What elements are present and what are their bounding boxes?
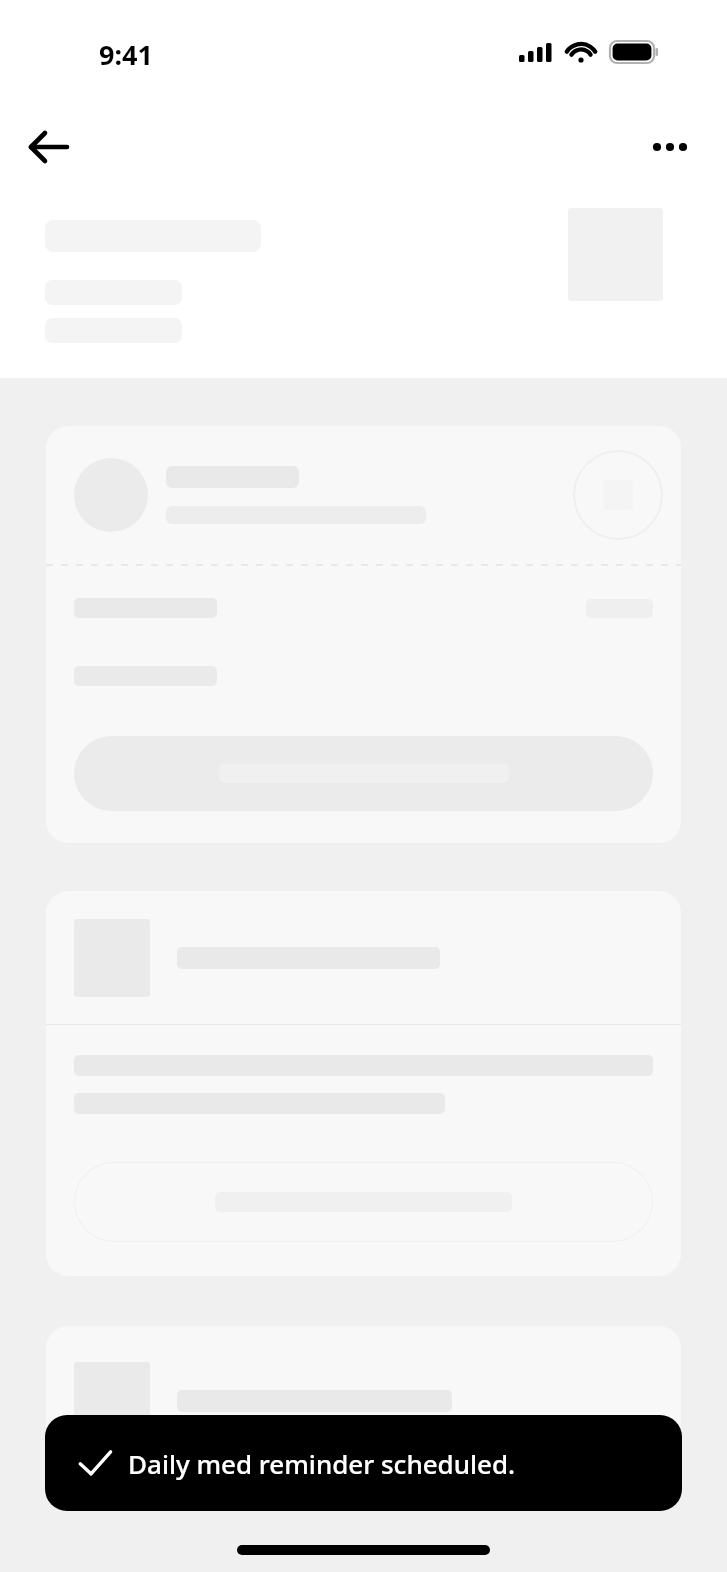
button[interactable] bbox=[46, 891, 681, 1276]
button[interactable]: Daily med reminder scheduled. bbox=[45, 1415, 682, 1511]
button[interactable]: Back bbox=[18, 116, 80, 178]
button[interactable]: Action bbox=[46, 426, 681, 843]
button[interactable] bbox=[46, 1326, 681, 1476]
staticText: 9:41 bbox=[99, 36, 153, 73]
button[interactable]: More options bbox=[639, 116, 701, 178]
staticText: Daily med reminder scheduled. bbox=[128, 1446, 516, 1481]
